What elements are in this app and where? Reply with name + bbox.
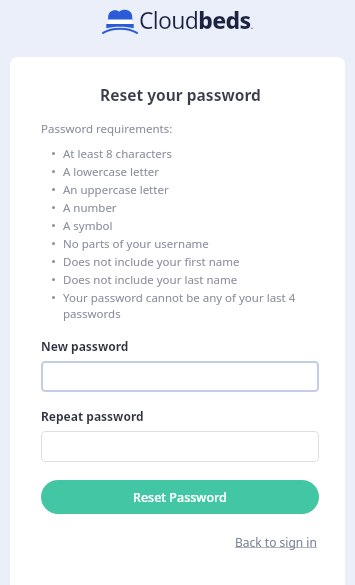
- staticText: Reset Password: [133, 489, 227, 506]
- staticText: A number: [63, 200, 117, 216]
- staticText: Reset your password: [100, 84, 261, 105]
- staticText: Repeat password: [41, 408, 144, 424]
- button[interactable]: Reset Password: [41, 480, 319, 514]
- staticText: No parts of your username: [63, 236, 209, 252]
- staticText: New password: [41, 338, 129, 354]
- staticText: Does not include your first name: [63, 254, 240, 270]
- staticText: Password requirements:: [41, 121, 173, 137]
- staticText: A lowercase letter: [63, 164, 160, 180]
- staticText: Does not include your last name: [63, 272, 238, 288]
- staticText: At least 8 characters: [63, 146, 173, 162]
- staticText: Cloudbeds.: [139, 4, 253, 35]
- staticText: An uppercase letter: [63, 182, 169, 198]
- button[interactable]: Password input: [41, 431, 319, 462]
- button[interactable]: Password input: [41, 361, 319, 392]
- staticText: A symbol: [63, 218, 113, 234]
- other: Cloudbeds logo: [102, 8, 138, 34]
- button[interactable]: Back to sign in: [233, 532, 319, 552]
- staticText: Back to sign in: [235, 534, 317, 550]
- staticText: Your password cannot be any of your last…: [63, 290, 319, 321]
